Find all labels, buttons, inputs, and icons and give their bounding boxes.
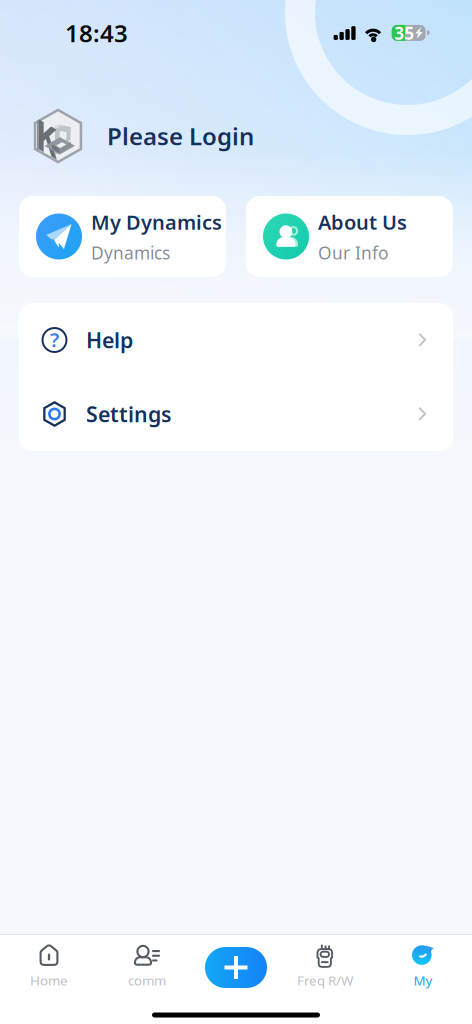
staticText: 18:43 [65, 17, 128, 49]
button[interactable]: Add [191, 937, 281, 997]
staticText: Dynamics [91, 241, 170, 264]
staticText: ? [50, 326, 59, 353]
staticText: comm [128, 971, 166, 989]
button[interactable]: Freq R/W [276, 941, 374, 1004]
staticText: My Dynamics [91, 209, 222, 235]
staticText: Our Info [318, 241, 388, 264]
button[interactable]: Home [0, 941, 98, 1004]
button[interactable]: comm [98, 941, 196, 1004]
button[interactable]: My Dynamics [19, 196, 226, 277]
staticText: My [413, 971, 432, 989]
staticText: 35 [394, 21, 414, 44]
staticText: Help [86, 326, 133, 354]
button[interactable]: Settings [19, 377, 453, 451]
staticText: Please Login [107, 120, 254, 152]
staticText: Freq R/W [297, 971, 353, 989]
button[interactable]: ? [19, 303, 453, 377]
button[interactable]: My [374, 941, 472, 1004]
button[interactable]: About Us [246, 196, 453, 277]
staticText: Home [30, 971, 68, 989]
staticText: About Us [318, 209, 407, 235]
staticText: Settings [86, 400, 172, 428]
